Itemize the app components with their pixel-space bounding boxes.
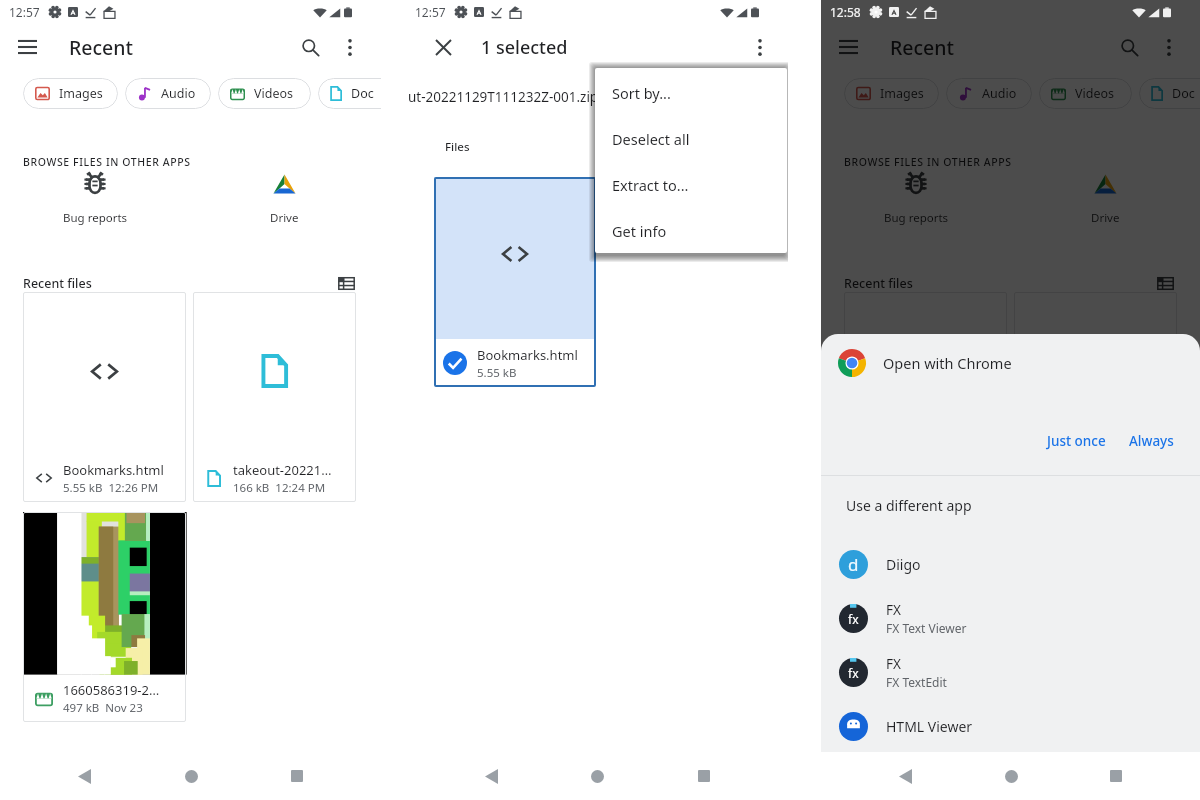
button[interactable]: Audio <box>125 78 211 109</box>
button[interactable]: 1660586319-2… <box>23 512 186 722</box>
button[interactable]: Home <box>169 754 213 798</box>
button[interactable]: Recent apps <box>275 754 319 798</box>
button[interactable]: Doc <box>1139 78 1200 109</box>
button[interactable]: More options <box>335 32 365 62</box>
staticText: Doc <box>1172 85 1195 102</box>
staticText: Audio <box>982 85 1017 102</box>
staticText: ut-20221129T111232Z-001.zip <box>408 88 599 106</box>
staticText: Bug reports <box>884 210 949 226</box>
button[interactable]: Get info <box>595 208 787 254</box>
button[interactable]: Home <box>989 754 1033 798</box>
button[interactable]: Search <box>291 28 329 66</box>
staticText: Audio <box>161 85 196 102</box>
staticText: Always <box>1129 432 1174 450</box>
button[interactable]: Open with Chrome <box>838 340 1200 386</box>
button[interactable]: Videos <box>218 78 311 109</box>
staticText: Get info <box>612 221 667 241</box>
staticText: Files <box>445 139 470 155</box>
staticText: Videos <box>1075 85 1115 102</box>
staticText: Recent files <box>844 275 913 292</box>
staticText: Recent <box>69 34 133 61</box>
button[interactable]: Bookmarks.html <box>434 177 596 387</box>
button[interactable]: fx <box>839 645 1200 699</box>
staticText: Images <box>880 85 924 102</box>
staticText: FX TextEdit <box>886 674 947 690</box>
staticText: HTML Viewer <box>886 717 973 736</box>
button[interactable]: fx <box>839 591 1200 645</box>
button[interactable]: Bug reports <box>873 172 959 226</box>
button[interactable]: Always <box>1120 424 1183 458</box>
button[interactable]: Back <box>62 754 106 798</box>
button[interactable]: Drive <box>1062 172 1148 226</box>
button[interactable]: Search <box>1110 28 1148 66</box>
staticText: Drive <box>1091 210 1120 226</box>
button[interactable]: Open navigation drawer <box>830 29 866 65</box>
button[interactable]: Doc <box>318 78 381 109</box>
button[interactable]: Videos <box>1039 78 1132 109</box>
staticText: 12:57 <box>415 4 446 20</box>
button[interactable]: Drive <box>241 172 327 226</box>
button[interactable]: Bug reports <box>52 172 138 226</box>
staticText: 5.55 kB 12:26 PM <box>63 480 159 496</box>
button[interactable]: Sort by... <box>595 70 787 116</box>
button[interactable]: Home <box>575 754 619 798</box>
button[interactable]: Back <box>883 754 927 798</box>
button[interactable]: Recent apps <box>682 754 726 798</box>
button[interactable]: Just once <box>1038 424 1115 458</box>
staticText: Deselect all <box>612 129 690 149</box>
button[interactable]: Audio <box>946 78 1032 109</box>
staticText: Extract to... <box>612 175 689 195</box>
staticText: 12:57 <box>9 4 40 20</box>
button[interactable]: Switch to list view <box>1152 270 1178 296</box>
staticText: Videos <box>254 85 294 102</box>
staticText: Drive <box>270 210 299 226</box>
staticText: Bookmarks.html <box>477 346 578 364</box>
button[interactable]: HTML Viewer <box>839 699 1200 752</box>
staticText: 12:58 <box>830 4 861 20</box>
staticText: Sort by... <box>612 83 671 103</box>
staticText: 497 kB Nov 23 <box>63 700 143 716</box>
staticText: d <box>848 553 859 576</box>
button[interactable]: Bookmarks.html <box>23 292 186 502</box>
staticText: takeout-20221… <box>233 461 332 479</box>
button[interactable]: Switch to list view <box>333 270 359 296</box>
staticText: Use a different app <box>846 496 972 515</box>
button[interactable]: Back <box>469 754 513 798</box>
staticText: Bug reports <box>63 210 128 226</box>
button[interactable]: Extract to... <box>595 162 787 208</box>
button[interactable]: Images <box>844 78 939 109</box>
button[interactable]: Close selection <box>426 30 460 64</box>
staticText: FX <box>886 601 901 619</box>
staticText: BROWSE FILES IN OTHER APPS <box>844 155 1012 169</box>
staticText: Open with Chrome <box>883 353 1012 373</box>
button[interactable]: d <box>839 537 1200 591</box>
staticText: Bookmarks.html <box>63 461 164 479</box>
button[interactable]: Recent apps <box>1094 754 1138 798</box>
button[interactable]: Open navigation drawer <box>9 29 45 65</box>
button[interactable]: More options <box>745 32 775 62</box>
staticText: Images <box>59 85 103 102</box>
staticText: Diigo <box>886 555 921 574</box>
staticText: 1 selected <box>481 35 568 60</box>
staticText: BROWSE FILES IN OTHER APPS <box>23 155 191 169</box>
staticText: fx <box>848 611 859 627</box>
staticText: fx <box>848 665 859 681</box>
staticText: Doc <box>351 85 374 102</box>
staticText: 166 kB 12:24 PM <box>233 480 326 496</box>
button[interactable]: Deselect all <box>595 116 787 162</box>
staticText: FX Text Viewer <box>886 620 967 636</box>
staticText: 1660586319-2… <box>63 681 160 699</box>
staticText: 5.55 kB <box>477 365 517 381</box>
button[interactable]: Images <box>23 78 118 109</box>
button[interactable]: takeout-20221… <box>193 292 356 502</box>
button[interactable]: More options <box>1154 32 1184 62</box>
staticText: FX <box>886 655 901 673</box>
staticText: Recent <box>890 34 954 61</box>
staticText: Recent files <box>23 275 92 292</box>
staticText: Just once <box>1047 432 1106 450</box>
